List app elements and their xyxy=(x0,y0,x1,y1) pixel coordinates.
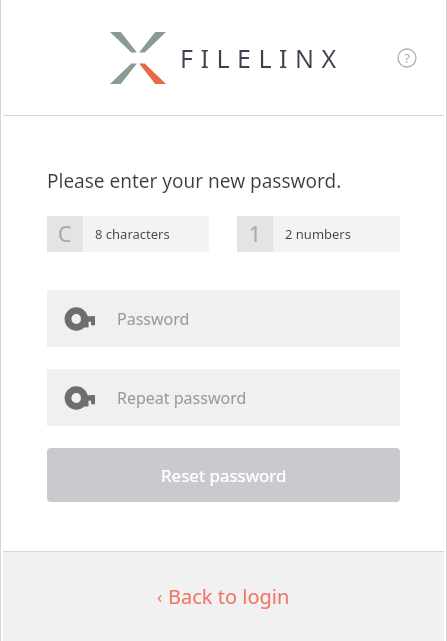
staticText: ? xyxy=(404,50,410,66)
staticText: ‹ xyxy=(157,585,163,608)
button[interactable]: Repeat password xyxy=(47,369,400,426)
staticText: Back to login xyxy=(168,583,290,610)
button[interactable]: ‹ xyxy=(147,577,300,616)
button[interactable]: 1 xyxy=(237,216,400,252)
button[interactable]: C xyxy=(47,216,209,252)
button[interactable]: Reset password xyxy=(47,448,400,502)
staticText: 8 characters xyxy=(95,225,170,243)
staticText: 2 numbers xyxy=(285,225,351,243)
button[interactable]: Password xyxy=(47,290,400,347)
staticText: F I L E L I N X xyxy=(180,41,337,75)
staticText: Repeat password xyxy=(117,387,247,409)
staticText: C xyxy=(58,220,72,249)
staticText: Password xyxy=(117,308,190,330)
button[interactable]: Help xyxy=(390,41,424,75)
staticText: Please enter your new password. xyxy=(47,168,342,194)
staticText: 1 xyxy=(249,220,262,249)
staticText: Reset password xyxy=(161,464,287,487)
